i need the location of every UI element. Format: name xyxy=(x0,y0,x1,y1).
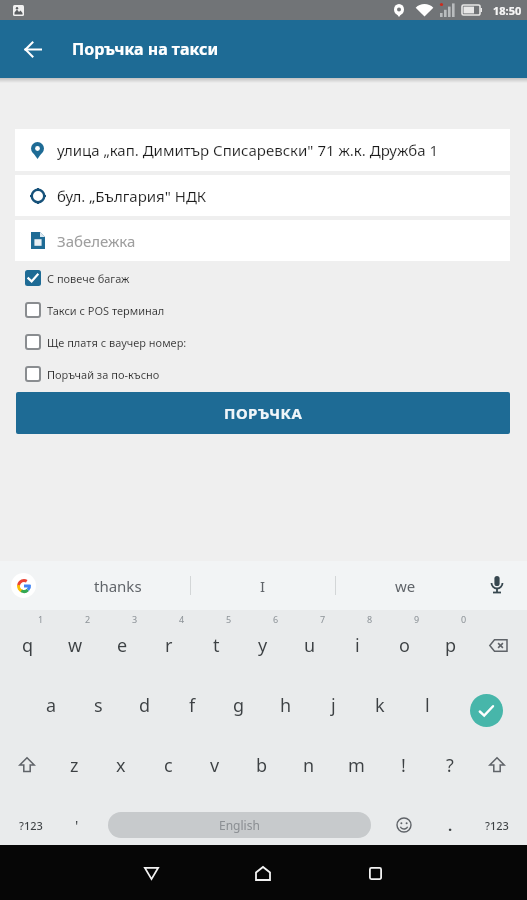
button[interactable]: e xyxy=(101,623,143,667)
button[interactable] xyxy=(389,810,419,840)
button[interactable] xyxy=(11,573,36,598)
button[interactable]: t xyxy=(195,623,237,667)
button[interactable]: z xyxy=(53,743,95,787)
button[interactable]: q xyxy=(7,623,49,667)
staticText: 2 xyxy=(85,613,91,625)
button[interactable]: . xyxy=(437,810,463,840)
staticText: v xyxy=(210,753,220,778)
button[interactable]: a xyxy=(30,683,72,727)
staticText: r xyxy=(165,633,173,658)
button[interactable]: u xyxy=(289,623,331,667)
button[interactable]: m xyxy=(335,743,377,787)
button[interactable]: ?123 xyxy=(476,810,518,840)
staticText: we xyxy=(395,576,416,596)
staticText: c xyxy=(164,753,173,778)
button[interactable] xyxy=(18,20,48,78)
staticText: ПОРЪЧКА xyxy=(224,403,303,423)
button[interactable]: ' xyxy=(62,810,92,840)
staticText: m xyxy=(348,753,365,778)
button[interactable]: ! xyxy=(382,743,424,787)
button[interactable] xyxy=(470,694,503,727)
button[interactable]: i xyxy=(336,623,378,667)
button[interactable]: бул. „България" НДК xyxy=(15,175,510,216)
staticText: 8 xyxy=(367,613,373,625)
button[interactable]: ?123 xyxy=(10,810,52,840)
staticText: С повече багаж xyxy=(47,271,130,286)
staticText: o xyxy=(399,633,410,658)
button[interactable]: n xyxy=(288,743,330,787)
button[interactable] xyxy=(482,571,512,601)
button[interactable] xyxy=(355,853,395,893)
staticText: Ще платя с ваучер номер: xyxy=(47,335,187,350)
button[interactable]: С повече багаж xyxy=(15,270,335,286)
staticText: улица „кап. Димитър Списаревски" 71 ж.к.… xyxy=(57,140,439,160)
staticText: ? xyxy=(446,753,454,778)
button[interactable]: s xyxy=(77,683,119,727)
staticText: ?123 xyxy=(485,818,509,833)
staticText: I xyxy=(260,576,266,596)
staticText: h xyxy=(280,693,292,718)
staticText: English xyxy=(219,817,260,833)
staticText: g xyxy=(233,693,245,718)
staticText: Поръчай за по-късно xyxy=(47,367,160,382)
button[interactable] xyxy=(480,748,514,782)
button[interactable]: g xyxy=(218,683,260,727)
button[interactable]: h xyxy=(265,683,307,727)
staticText: f xyxy=(189,693,196,718)
staticText: Такси с POS терминал xyxy=(47,303,165,318)
button[interactable]: Ще платя с ваучер номер: xyxy=(15,334,335,350)
staticText: ?123 xyxy=(19,818,43,833)
button[interactable] xyxy=(243,853,283,893)
staticText: d xyxy=(139,693,151,718)
button[interactable]: Поръчай за по-късно xyxy=(15,366,335,382)
button[interactable]: o xyxy=(383,623,425,667)
staticText: z xyxy=(70,753,79,778)
button[interactable]: ? xyxy=(429,743,471,787)
button[interactable]: y xyxy=(242,623,284,667)
button[interactable]: ПОРЪЧКА xyxy=(16,392,510,434)
button[interactable]: w xyxy=(54,623,96,667)
button[interactable]: Забележка xyxy=(15,220,510,261)
button[interactable]: x xyxy=(100,743,142,787)
button[interactable]: r xyxy=(148,623,190,667)
staticText: Поръчка на такси xyxy=(72,38,219,60)
staticText: 9 xyxy=(414,613,420,625)
staticText: l xyxy=(425,693,430,718)
staticText: 5 xyxy=(226,613,232,625)
staticText: 18:50 xyxy=(493,3,522,18)
button[interactable]: I xyxy=(205,561,320,610)
staticText: q xyxy=(22,633,34,658)
button[interactable]: d xyxy=(124,683,166,727)
staticText: n xyxy=(303,753,315,778)
button[interactable]: English xyxy=(108,812,371,838)
staticText: k xyxy=(375,693,385,718)
button[interactable]: we xyxy=(348,561,463,610)
button[interactable]: f xyxy=(171,683,213,727)
staticText: thanks xyxy=(94,576,142,596)
staticText: 4 xyxy=(179,613,185,625)
button[interactable]: thanks xyxy=(53,561,183,610)
button[interactable]: улица „кап. Димитър Списаревски" 71 ж.к.… xyxy=(15,129,510,171)
staticText: t xyxy=(213,633,220,658)
button[interactable]: j xyxy=(312,683,354,727)
button[interactable] xyxy=(478,623,518,667)
staticText: Забележка xyxy=(57,231,136,251)
button[interactable]: v xyxy=(194,743,236,787)
button[interactable]: p xyxy=(430,623,472,667)
staticText: 0 xyxy=(461,613,467,625)
button[interactable]: k xyxy=(359,683,401,727)
button[interactable]: b xyxy=(241,743,283,787)
staticText: u xyxy=(304,633,316,658)
staticText: ! xyxy=(401,753,406,778)
button[interactable] xyxy=(131,853,171,893)
button[interactable]: c xyxy=(147,743,189,787)
button[interactable]: Такси с POS терминал xyxy=(15,302,335,318)
staticText: p xyxy=(445,633,457,658)
staticText: 3 xyxy=(132,613,138,625)
button[interactable] xyxy=(10,748,44,782)
staticText: s xyxy=(94,693,103,718)
staticText: i xyxy=(355,633,360,658)
staticText: ' xyxy=(75,815,79,835)
staticText: бул. „България" НДК xyxy=(57,186,207,206)
button[interactable]: l xyxy=(406,683,448,727)
